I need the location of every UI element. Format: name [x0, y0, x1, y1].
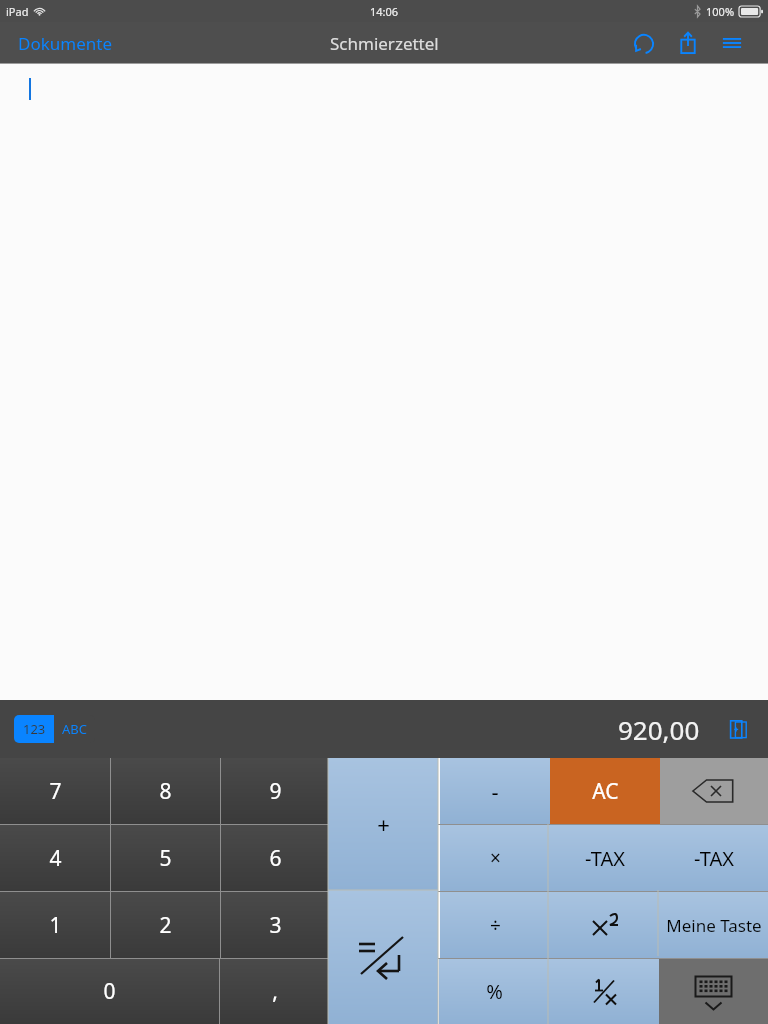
- staticText: 3: [269, 911, 282, 940]
- staticText: 6: [269, 844, 282, 873]
- button[interactable]: 1: [0, 892, 110, 958]
- staticText: Dokumente: [18, 32, 112, 55]
- staticText: Schmierzettel: [330, 32, 439, 55]
- button[interactable]: Dokumente: [0, 24, 130, 63]
- button[interactable]: Insert: [722, 713, 756, 747]
- staticText: 7: [49, 777, 62, 806]
- staticText: +: [377, 809, 390, 839]
- staticText: 123: [23, 720, 46, 738]
- button[interactable]: 6: [221, 825, 330, 891]
- staticText: iPad: [6, 4, 29, 19]
- button[interactable]: 2: [111, 892, 220, 958]
- button[interactable]: x squared: [550, 892, 660, 958]
- button[interactable]: %: [439, 959, 549, 1024]
- button[interactable]: ,: [220, 959, 329, 1024]
- button[interactable]: Backspace: [660, 758, 768, 824]
- button[interactable]: 3: [221, 892, 330, 958]
- staticText: -TAX: [694, 845, 734, 872]
- staticText: 1: [49, 911, 62, 940]
- button[interactable]: 0: [0, 959, 219, 1024]
- button[interactable]: 7: [0, 758, 110, 824]
- button[interactable]: -TAX: [550, 825, 660, 891]
- staticText: 4: [49, 844, 62, 873]
- staticText: 9: [269, 777, 282, 806]
- button[interactable]: 123: [14, 715, 95, 743]
- staticText: 14:06: [370, 4, 399, 19]
- button[interactable]: 4: [0, 825, 110, 891]
- staticText: 0: [103, 977, 116, 1006]
- button[interactable]: ÷: [440, 892, 550, 958]
- staticText: Meine Taste: [666, 914, 762, 937]
- button[interactable]: -: [440, 758, 550, 824]
- staticText: ÷: [490, 912, 501, 938]
- staticText: AC: [592, 777, 619, 806]
- button[interactable]: Hide keyboard: [659, 959, 768, 1024]
- button[interactable]: reciprocal: [549, 959, 659, 1024]
- staticText: 2: [159, 911, 172, 940]
- button[interactable]: +: [328, 758, 438, 890]
- staticText: 5: [159, 844, 172, 873]
- button[interactable]: 9: [221, 758, 330, 824]
- button[interactable]: Undo: [622, 22, 666, 64]
- button[interactable]: -TAX: [660, 825, 768, 891]
- staticText: ,: [272, 977, 278, 1006]
- button[interactable]: equals: [328, 890, 438, 1024]
- staticText: %: [486, 978, 503, 1005]
- button[interactable]: 5: [111, 825, 220, 891]
- staticText: 920,00: [618, 712, 700, 747]
- button[interactable]: Menu: [710, 22, 754, 64]
- button[interactable]: Share: [666, 22, 710, 64]
- staticText: 8: [159, 777, 172, 806]
- staticText: 100%: [706, 4, 735, 19]
- button[interactable]: AC: [550, 758, 660, 824]
- staticText: -: [491, 776, 499, 806]
- staticText: ABC: [62, 720, 87, 738]
- button[interactable]: 8: [111, 758, 220, 824]
- staticText: ×: [490, 845, 501, 871]
- button[interactable]: Meine Taste: [660, 892, 768, 958]
- button[interactable]: ×: [440, 825, 550, 891]
- staticText: -TAX: [585, 845, 625, 872]
